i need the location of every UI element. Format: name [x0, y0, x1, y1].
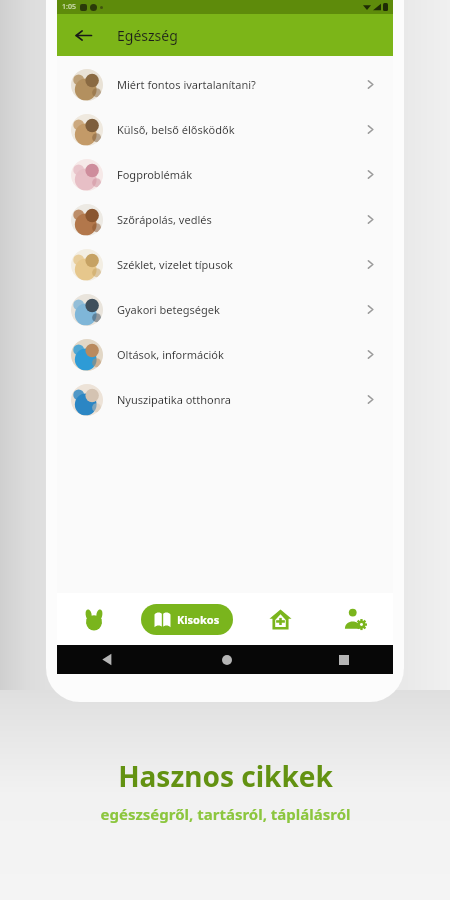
button[interactable]: Fogproblémák: [57, 152, 393, 197]
staticText: Kisokos: [177, 612, 220, 627]
button[interactable]: Széklet, vizelet típusok: [57, 242, 393, 287]
staticText: Oltások, információk: [117, 347, 224, 362]
staticText: Fogproblémák: [117, 167, 193, 182]
staticText: Miért fontos ivartalanítani?: [117, 77, 256, 92]
button[interactable]: Oltások, információk: [57, 332, 393, 377]
staticText: Egészség: [117, 26, 178, 45]
staticText: Külső, belső élősködők: [117, 122, 235, 137]
staticText: Gyakori betegségek: [117, 302, 220, 317]
button[interactable]: Állatorvos: [243, 593, 318, 645]
button[interactable]: Profil beállítások: [318, 593, 393, 645]
button[interactable]: Gyakori betegségek: [57, 287, 393, 332]
button[interactable]: Nyuszim: [57, 593, 131, 645]
button[interactable]: Kisokos: [131, 593, 243, 645]
staticText: Szőrápolás, vedlés: [117, 212, 212, 227]
button[interactable]: Nyuszipatika otthonra: [57, 377, 393, 422]
staticText: egészségről, tartásról, táplálásról: [100, 804, 351, 824]
staticText: 1:05: [62, 2, 76, 12]
staticText: Széklet, vizelet típusok: [117, 257, 233, 272]
button[interactable]: Külső, belső élősködők: [57, 107, 393, 152]
staticText: Nyuszipatika otthonra: [117, 392, 232, 407]
staticText: Hasznos cikkek: [118, 757, 333, 795]
button[interactable]: Szőrápolás, vedlés: [57, 197, 393, 242]
button[interactable]: Vissza: [66, 18, 100, 52]
button[interactable]: Miért fontos ivartalanítani?: [57, 62, 393, 107]
